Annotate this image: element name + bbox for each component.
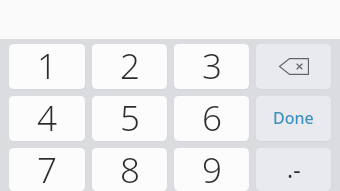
button[interactable]: .- [256, 148, 331, 191]
staticText: 7 [37, 148, 57, 189]
staticText: 8 [120, 148, 140, 189]
button[interactable]: Done [256, 96, 331, 141]
button[interactable]: 2 [92, 44, 167, 89]
staticText: 5 [120, 96, 140, 139]
button[interactable]: 7 [9, 148, 85, 191]
staticText: .- [287, 153, 301, 184]
button[interactable]: 5 [92, 96, 167, 141]
button[interactable]: 8 [92, 148, 167, 191]
staticText: 1 [37, 44, 57, 87]
staticText: 2 [120, 44, 140, 87]
button[interactable]: 6 [174, 96, 249, 141]
staticText: 6 [202, 96, 222, 139]
button[interactable]: 4 [9, 96, 85, 141]
button[interactable]: Backspace [256, 44, 331, 89]
button[interactable]: 9 [174, 148, 249, 191]
staticText: 4 [37, 96, 57, 139]
button[interactable]: 3 [174, 44, 249, 89]
staticText: 9 [202, 148, 222, 189]
button[interactable]: 1 [9, 44, 85, 89]
staticText: Done [273, 107, 314, 129]
staticText: 3 [202, 44, 222, 87]
